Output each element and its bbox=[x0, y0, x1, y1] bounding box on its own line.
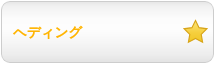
button[interactable]: Favorite bbox=[183, 20, 208, 45]
button[interactable]: ヘディング bbox=[1, 1, 214, 63]
staticText: ヘディング bbox=[13, 24, 83, 41]
